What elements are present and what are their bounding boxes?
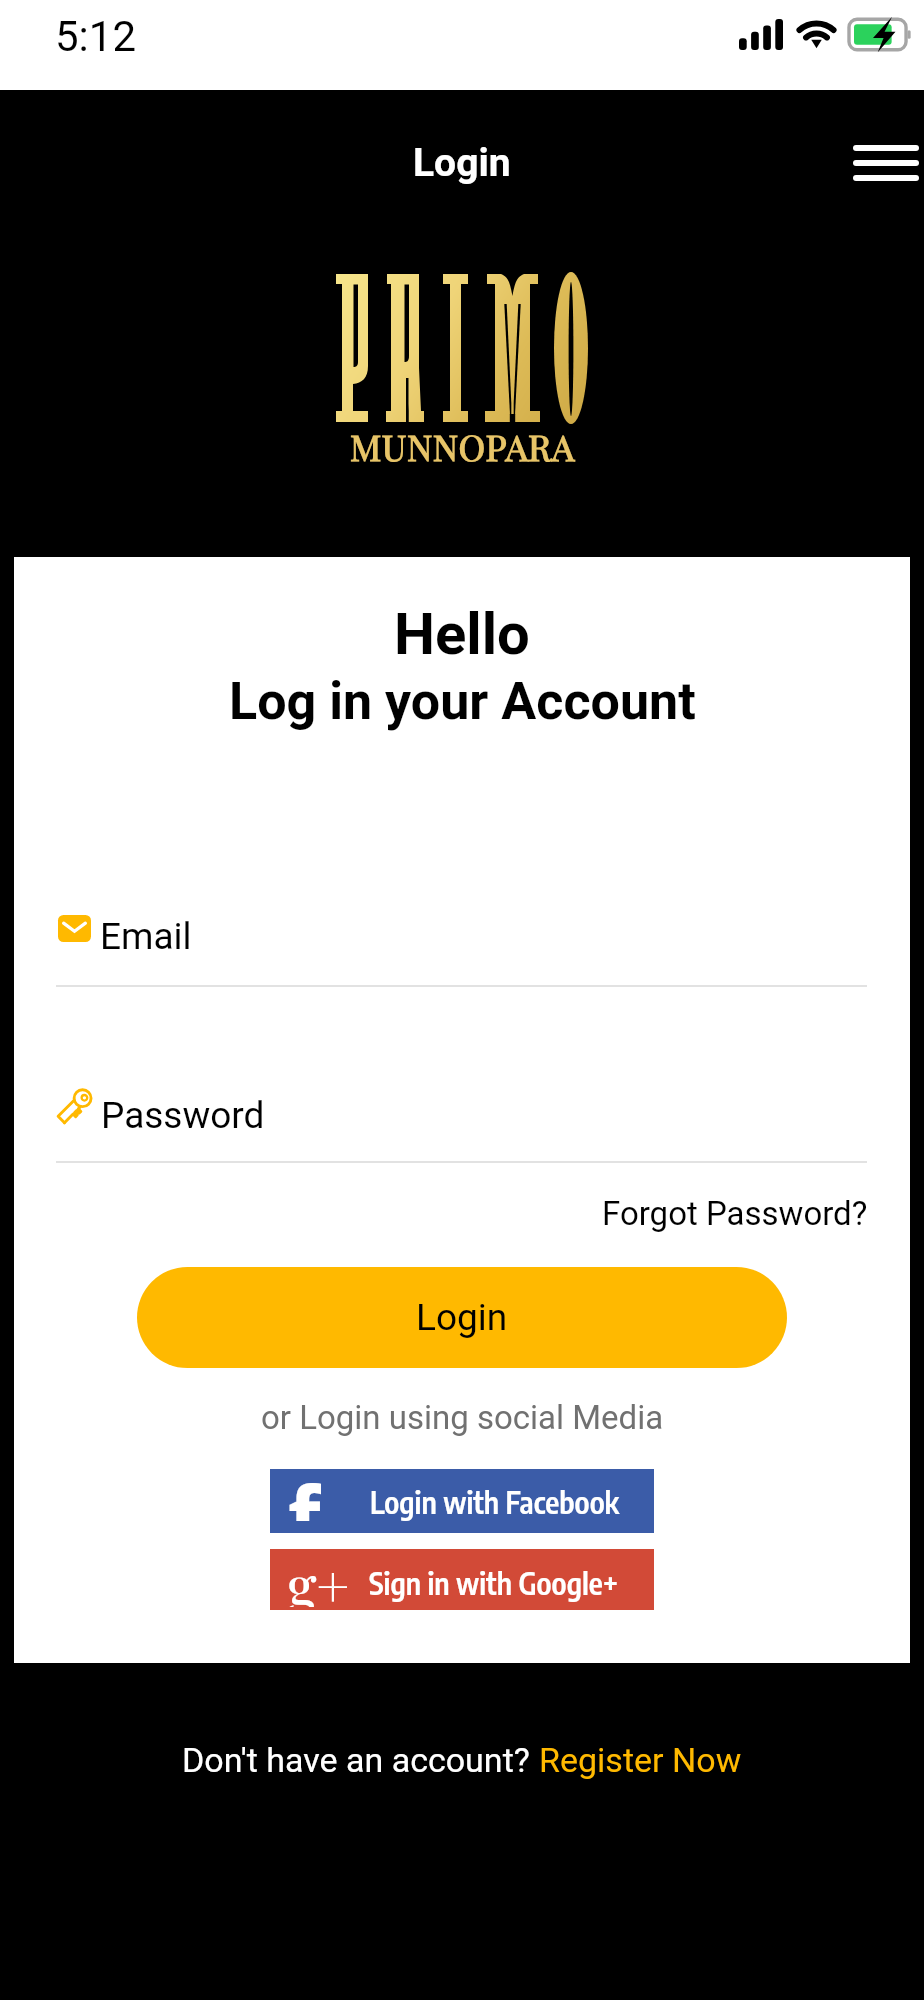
staticText: Don't have an account? (182, 1740, 539, 1780)
staticText: Login (416, 1296, 508, 1339)
staticText: Hello (394, 600, 530, 668)
button[interactable]: Menu (839, 118, 924, 208)
staticText: 5:12 (55, 12, 136, 61)
staticText: or Login using social Media (261, 1398, 664, 1437)
button[interactable]: Register Now (539, 1740, 742, 1780)
staticText: MUNNOPARA (350, 422, 575, 470)
button[interactable]: Login (137, 1267, 787, 1368)
staticText: f (288, 1457, 321, 1521)
button[interactable]: Email (56, 887, 867, 987)
staticText: g+ (287, 1546, 350, 1607)
staticText: Email (100, 915, 192, 958)
staticText: Login with Facebook (370, 1483, 620, 1520)
staticText: Sign in with Google+ (369, 1564, 619, 1601)
button[interactable]: Forgot Password? (602, 1194, 868, 1233)
button[interactable]: f (270, 1469, 654, 1533)
staticText: Log in your Account (229, 671, 696, 732)
button[interactable]: g+ (270, 1549, 654, 1610)
staticText: Password (101, 1094, 265, 1137)
staticText: Login (413, 140, 511, 186)
button[interactable]: Password (56, 1063, 867, 1163)
